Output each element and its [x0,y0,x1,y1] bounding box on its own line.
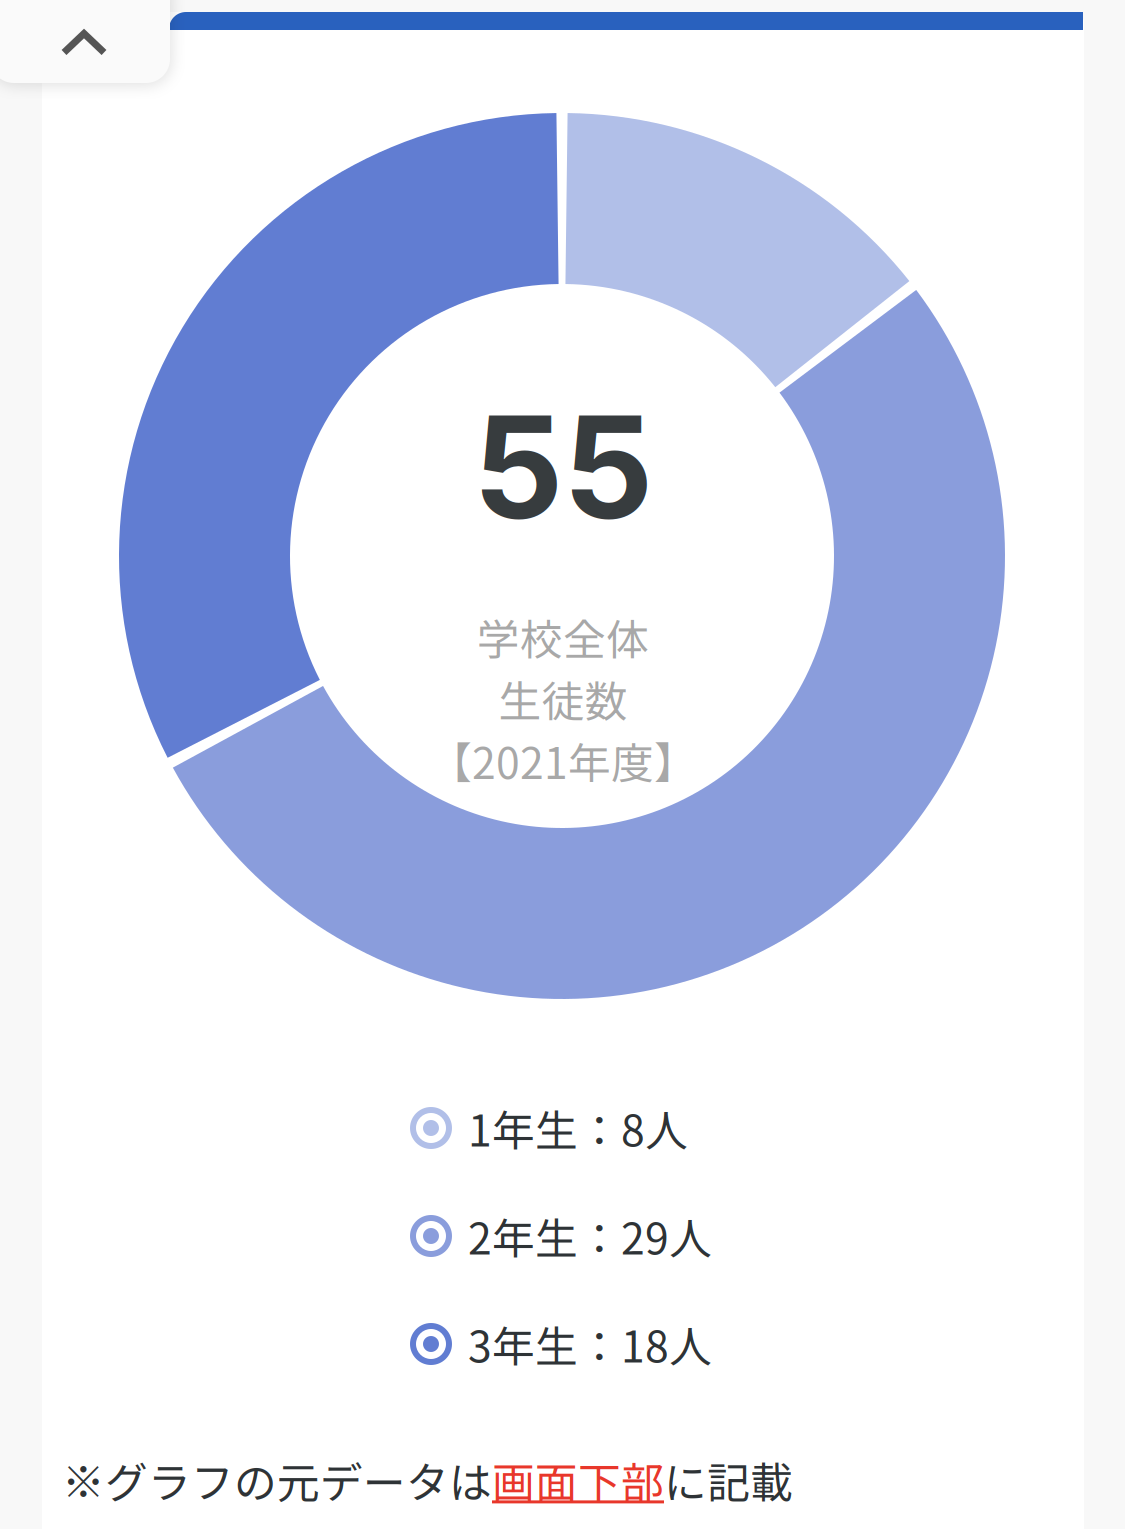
staticText: 3年生：18人 [468,1313,712,1375]
staticText: に記載 [664,1449,793,1511]
button[interactable]: 2年生：29人 [410,1200,750,1272]
staticText: 55 [473,381,653,552]
button[interactable]: 1年生：8人 [410,1092,750,1164]
staticText: 画面下部 [492,1449,664,1511]
staticText: 生徒数 [498,668,627,730]
staticText: ※グラフの元データは [62,1449,492,1511]
button[interactable]: 折りたたむ [0,0,180,110]
staticText: 2年生：29人 [468,1205,712,1267]
button[interactable]: 3年生：18人 [410,1308,750,1380]
button[interactable]: 画面下部 [492,1449,664,1511]
staticText: 1年生：8人 [468,1097,688,1159]
staticText: 学校全体 [477,606,649,668]
staticText: 【2021年度】 [429,730,697,791]
